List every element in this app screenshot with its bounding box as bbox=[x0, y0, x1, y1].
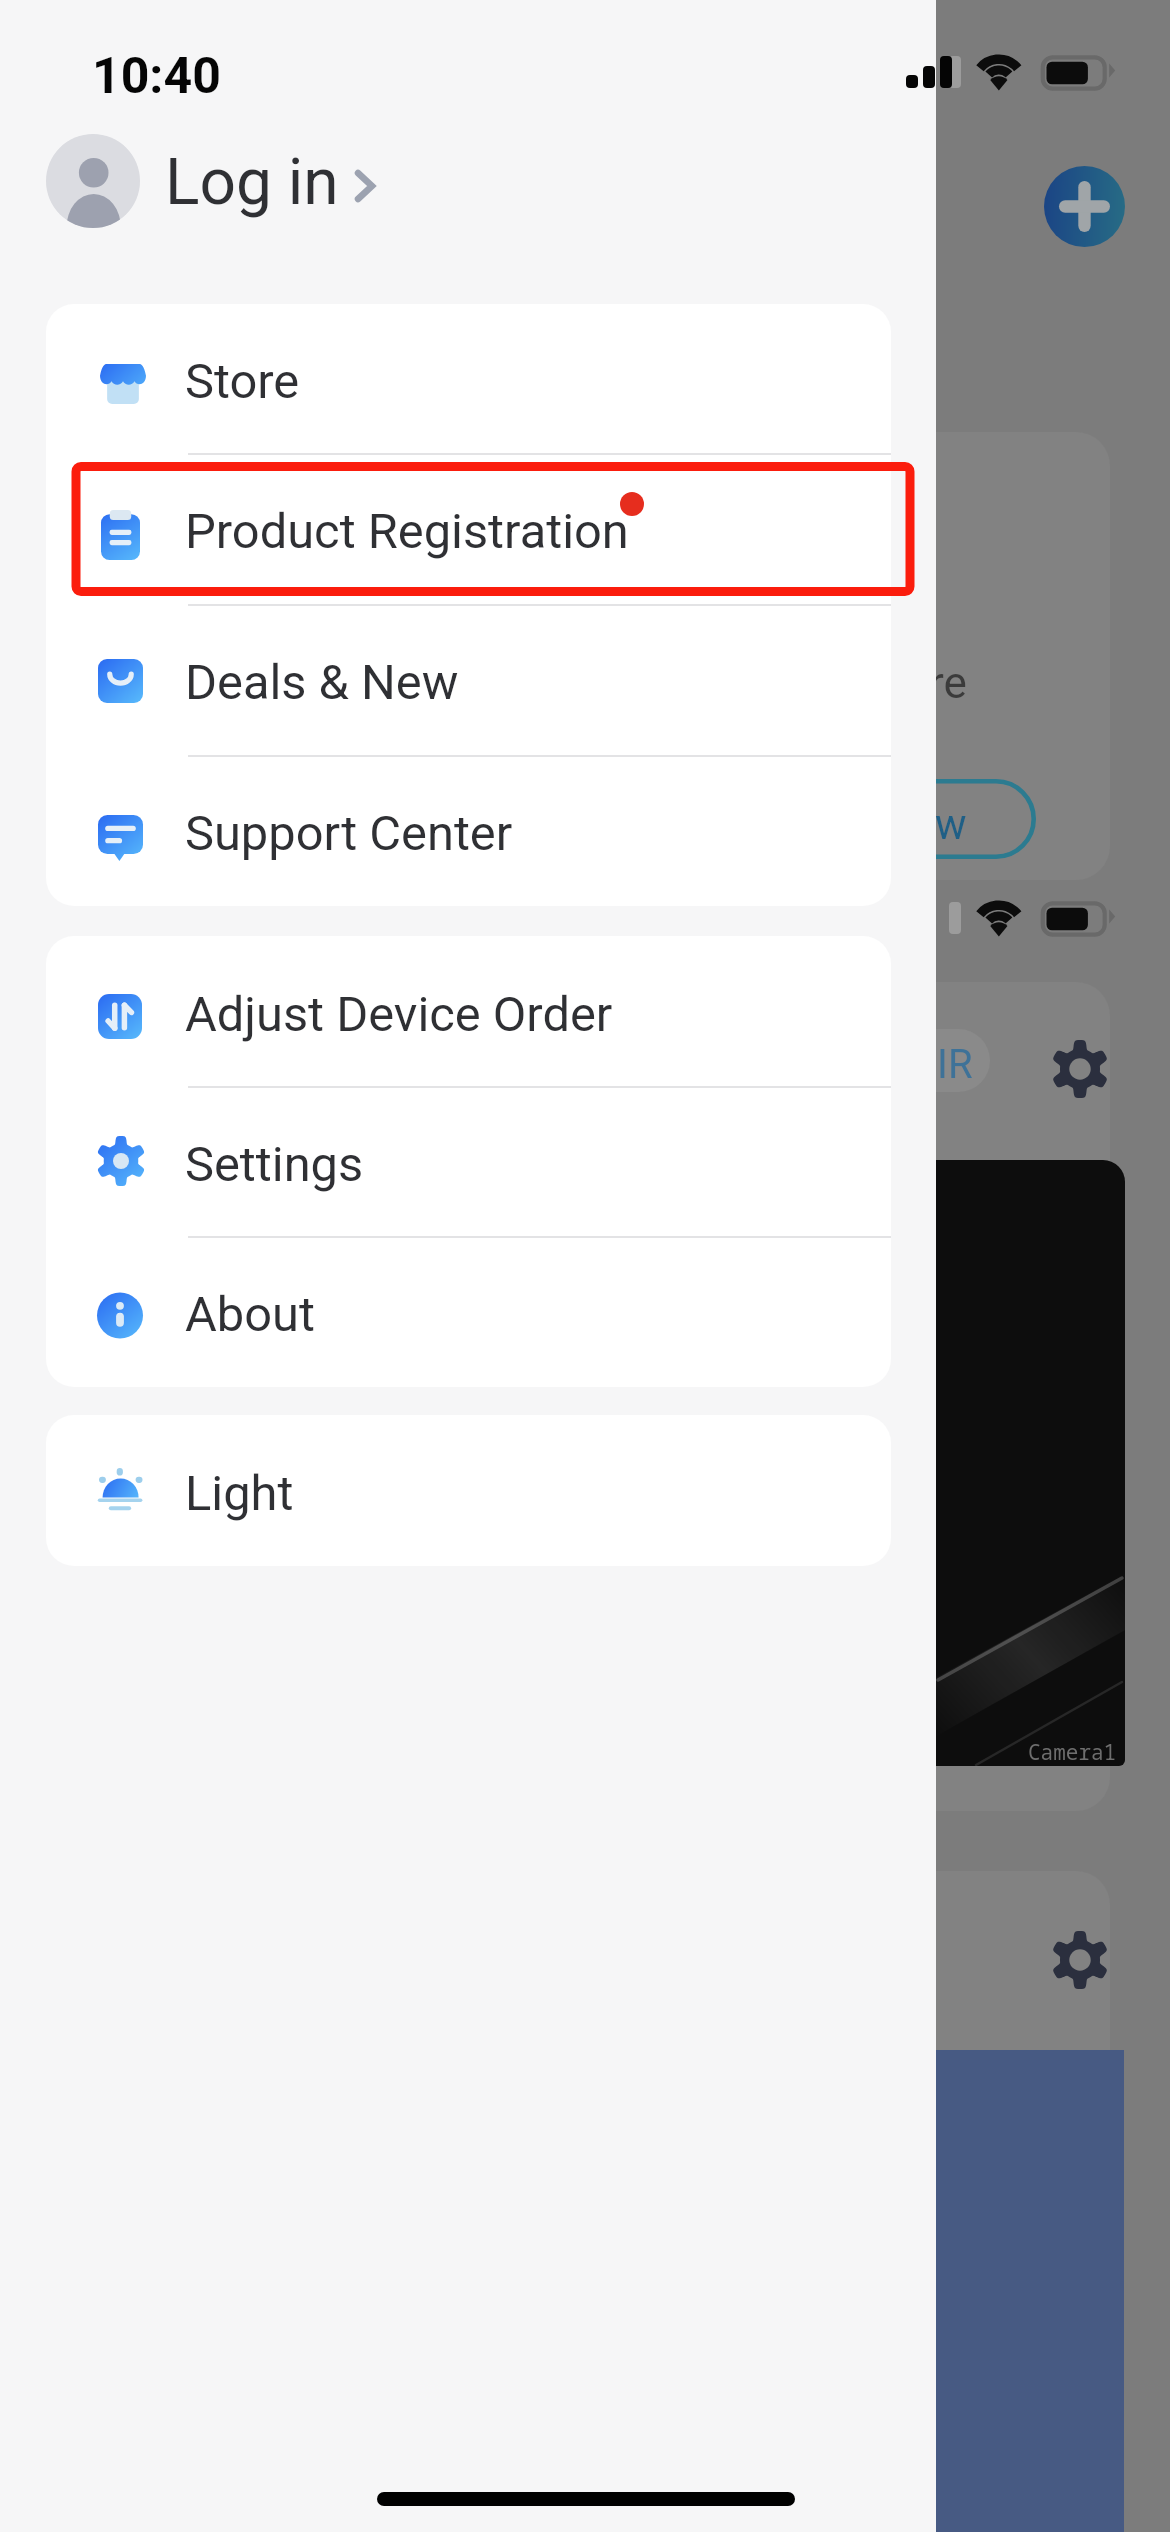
button[interactable]: Product Registration bbox=[46, 453, 891, 604]
staticText: Deals & New bbox=[185, 654, 459, 711]
staticText: About bbox=[185, 1286, 315, 1343]
button[interactable]: About bbox=[46, 1236, 891, 1387]
staticText: re bbox=[929, 657, 967, 709]
staticText: Support Center bbox=[185, 805, 513, 862]
button[interactable]: Store bbox=[46, 304, 891, 453]
staticText: Adjust Device Order bbox=[185, 986, 613, 1043]
staticText: Log in bbox=[165, 145, 339, 220]
button[interactable]: Add device bbox=[1044, 166, 1125, 247]
button[interactable]: Settings bbox=[46, 1086, 891, 1236]
button[interactable]: Light bbox=[46, 1415, 891, 1566]
staticText: Camera1 bbox=[1028, 1738, 1117, 1767]
button[interactable]: Adjust Device Order bbox=[46, 936, 891, 1086]
staticText: w bbox=[935, 800, 967, 849]
staticText: Settings bbox=[185, 1136, 364, 1193]
button[interactable]: Log in bbox=[46, 134, 380, 228]
staticText: IR bbox=[937, 1041, 973, 1088]
staticText: Light bbox=[185, 1465, 294, 1522]
button[interactable]: Support Center bbox=[46, 755, 891, 906]
staticText: Store bbox=[185, 353, 300, 410]
staticText: Product Registration bbox=[185, 503, 629, 560]
staticText: 10:40 bbox=[92, 47, 221, 106]
button[interactable]: Deals & New bbox=[46, 604, 891, 755]
